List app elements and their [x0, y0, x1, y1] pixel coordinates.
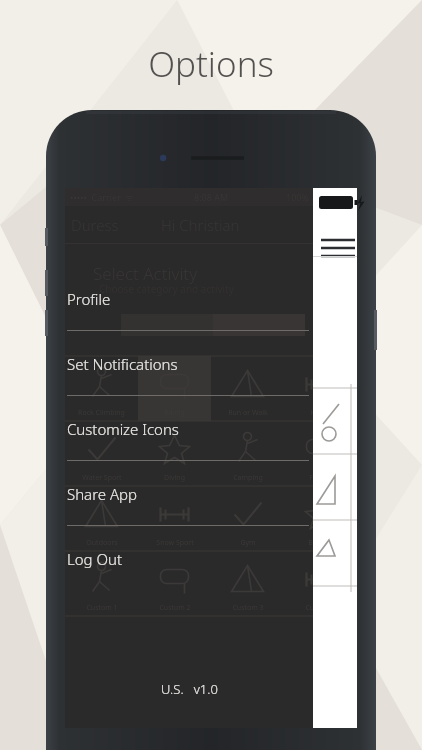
- staticText: Profile: [67, 289, 111, 309]
- button[interactable]: Share App: [65, 461, 357, 526]
- staticText: Fishing: [309, 473, 333, 483]
- staticText: Custom 4: [305, 603, 337, 613]
- staticText: Rock Climbing: [78, 408, 125, 418]
- staticText: Options: [148, 40, 274, 88]
- staticText: Gym: [240, 538, 256, 548]
- button[interactable]: Log Out: [65, 526, 357, 591]
- button[interactable]: Set Notifications: [65, 331, 357, 396]
- staticText: Snow Sport: [156, 538, 194, 548]
- staticText: Custom 3: [232, 603, 264, 613]
- staticText: Customize Icons: [67, 419, 179, 439]
- staticText: Custom 1: [86, 603, 118, 613]
- staticText: U.S. v1.0: [161, 680, 218, 698]
- button[interactable]: Customize Icons: [65, 396, 357, 461]
- button[interactable]: Menu: [313, 226, 357, 252]
- staticText: Custom 2: [159, 603, 191, 613]
- staticText: Hiking: [310, 408, 332, 418]
- staticText: Camping: [233, 473, 263, 483]
- staticText: Log Out: [67, 549, 122, 569]
- staticText: Boating: [308, 538, 334, 548]
- staticText: Diving: [164, 473, 185, 483]
- staticText: Set Notifications: [67, 354, 178, 374]
- button[interactable]: Profile: [65, 266, 357, 331]
- staticText: Run or Walk: [228, 408, 268, 418]
- staticText: Share App: [67, 484, 138, 504]
- staticText: Outdoors: [86, 538, 118, 548]
- staticText: Water Sport: [82, 473, 122, 483]
- staticText: Choose category and activity: [99, 282, 234, 296]
